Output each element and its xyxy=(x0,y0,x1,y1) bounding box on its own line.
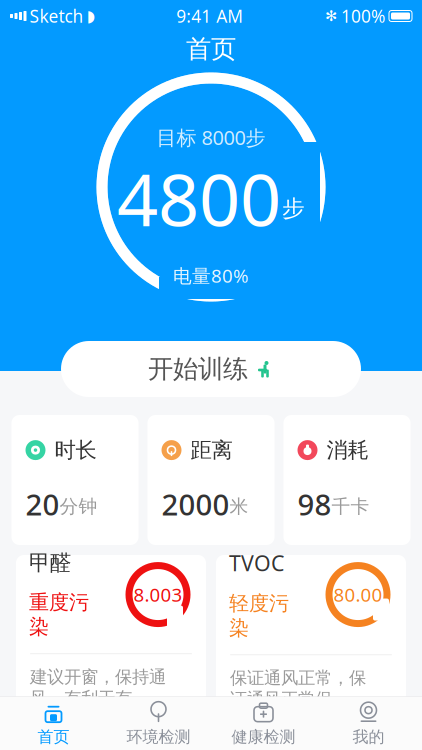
staticText: 8.003 xyxy=(133,582,182,607)
staticText: 20 xyxy=(25,485,59,524)
staticText: 时长 xyxy=(54,437,96,463)
staticText: 千卡 xyxy=(331,495,369,518)
staticText: 重度污染 xyxy=(29,590,89,639)
staticText: 电量80% xyxy=(173,263,249,288)
staticText: 9:41 AM xyxy=(176,4,243,27)
staticText: 100% xyxy=(341,4,385,27)
button[interactable]: 消耗 xyxy=(283,415,410,545)
button[interactable]: 甲醛 xyxy=(16,555,206,715)
staticText: 目标 8000步 xyxy=(156,124,265,151)
staticText: 消耗 xyxy=(326,437,368,463)
staticText: 2000 xyxy=(161,485,229,524)
staticText: ✻ xyxy=(325,8,337,24)
button[interactable]: 我的 xyxy=(316,697,421,749)
staticText: 4800 xyxy=(117,151,281,246)
staticText: 轻度污染 xyxy=(229,591,289,640)
button[interactable]: 首页 xyxy=(186,34,236,64)
staticText: TVOC xyxy=(229,549,284,577)
staticText: 80.00 xyxy=(333,582,382,607)
staticText: ◗ xyxy=(86,7,94,25)
staticText: 米 xyxy=(229,495,248,518)
staticText: 首页 xyxy=(37,727,69,747)
button[interactable]: 开始训练 xyxy=(61,341,361,397)
staticText: Sketch xyxy=(29,4,83,27)
button[interactable]: 环境检测 xyxy=(106,697,211,749)
staticText: 建议开窗，保持通风，有利于有 害气体排出 xyxy=(30,666,166,730)
staticText: 保证通风正常，保证通风正常保 证通风正常 xyxy=(230,667,366,731)
staticText: 首页 xyxy=(186,33,236,64)
button[interactable]: 距离 xyxy=(147,415,274,545)
staticText: 甲醛 xyxy=(29,550,71,576)
button[interactable]: 健康检测 xyxy=(211,697,316,749)
staticText: 距离 xyxy=(190,437,232,463)
button[interactable]: 时长 xyxy=(11,415,138,545)
staticText: 步 xyxy=(282,194,305,222)
staticText: 开始训练 xyxy=(148,353,248,384)
staticText: 我的 xyxy=(352,727,384,747)
staticText: 健康检测 xyxy=(231,727,295,747)
staticText: 环境检测 xyxy=(126,727,190,747)
staticText: 98 xyxy=(297,485,331,524)
button[interactable]: TVOC xyxy=(216,555,406,715)
button[interactable]: 首页 xyxy=(1,697,106,749)
staticText: 分钟 xyxy=(59,495,97,518)
